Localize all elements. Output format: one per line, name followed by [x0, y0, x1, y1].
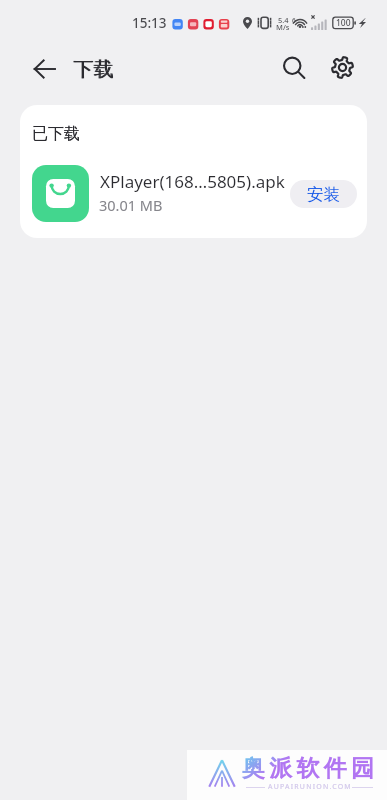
button[interactable]: 安装 [290, 180, 357, 208]
staticText: 已下载 [32, 124, 80, 144]
staticText: 100 [336, 17, 351, 29]
staticText: 奥派软件园 [240, 754, 376, 783]
staticText: 5.4 [278, 15, 289, 25]
staticText: 15:13 [132, 14, 167, 32]
button[interactable]: XPlayer(168…5805).apk [20, 159, 367, 225]
button[interactable]: Back [25, 50, 63, 88]
staticText: 已下载 [32, 124, 80, 144]
staticText: 下载 [73, 57, 113, 82]
staticText: 30.01 MB [99, 195, 163, 215]
staticText: 安装 [307, 184, 340, 205]
staticText: AUPAIRUNION.COM [268, 782, 352, 792]
staticText: M/s [276, 22, 290, 32]
button[interactable]: Settings [323, 48, 362, 87]
staticText: 下载 [74, 57, 114, 82]
staticText: 6 [292, 16, 296, 25]
button[interactable]: Search [274, 48, 313, 87]
staticText: XPlayer(168…5805).apk [100, 170, 285, 193]
